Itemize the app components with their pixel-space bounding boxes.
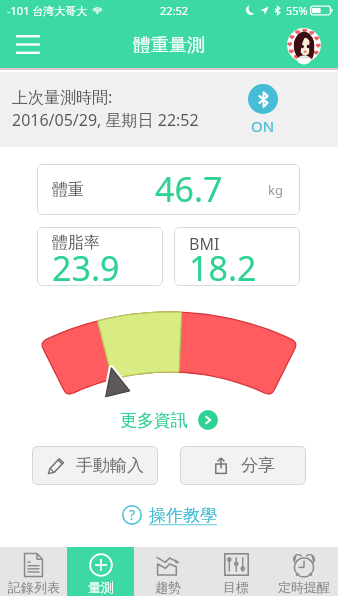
staticText: 體重量測 — [133, 34, 205, 57]
staticText: 體重 — [52, 180, 84, 200]
button[interactable]: 更多資訊 — [0, 408, 338, 432]
staticText: 55% — [286, 3, 308, 18]
staticText: 分享 — [241, 455, 275, 476]
button[interactable]: 量測 — [67, 547, 134, 596]
staticText: 22:52 — [160, 3, 189, 18]
staticText: 2016/05/29, 星期日 22:52 — [12, 109, 199, 131]
staticText: 體脂率 — [52, 233, 100, 253]
staticText: 定時提醒 — [278, 579, 330, 595]
staticText: 18.2 — [189, 245, 257, 286]
staticText: 目標 — [223, 579, 249, 595]
staticText: 更多資訊 — [120, 410, 188, 431]
button[interactable]: Menu — [8, 24, 48, 64]
button[interactable]: 趨勢 — [134, 547, 202, 596]
staticText: BMI — [189, 233, 220, 255]
button[interactable]: 體重 — [37, 164, 300, 215]
button[interactable]: ? — [0, 504, 338, 526]
staticText: 操作教學 — [149, 505, 217, 526]
button[interactable]: Profile — [285, 26, 322, 63]
staticText: kg — [268, 181, 283, 199]
button[interactable]: 手動輸入 — [32, 446, 158, 485]
button[interactable]: 目標 — [202, 547, 270, 596]
button[interactable]: 定時提醒 — [270, 547, 338, 596]
staticText: ON — [251, 116, 275, 136]
staticText: 趨勢 — [155, 579, 181, 595]
button[interactable]: BMI — [174, 227, 300, 286]
button[interactable]: ON — [240, 84, 286, 136]
staticText: 上次量測時間: — [12, 86, 113, 108]
button[interactable]: 分享 — [180, 446, 306, 485]
staticText: ? — [129, 505, 136, 524]
staticText: 23.9 — [52, 245, 120, 286]
button[interactable]: 體脂率 — [37, 227, 163, 286]
staticText: 量測 — [88, 579, 114, 595]
button[interactable]: 記錄列表 — [0, 547, 67, 596]
staticText: 46.7 — [155, 166, 223, 212]
staticText: -101 台湾大哥大 — [7, 3, 88, 18]
staticText: 手動輸入 — [76, 455, 144, 476]
staticText: 記錄列表 — [8, 579, 60, 595]
